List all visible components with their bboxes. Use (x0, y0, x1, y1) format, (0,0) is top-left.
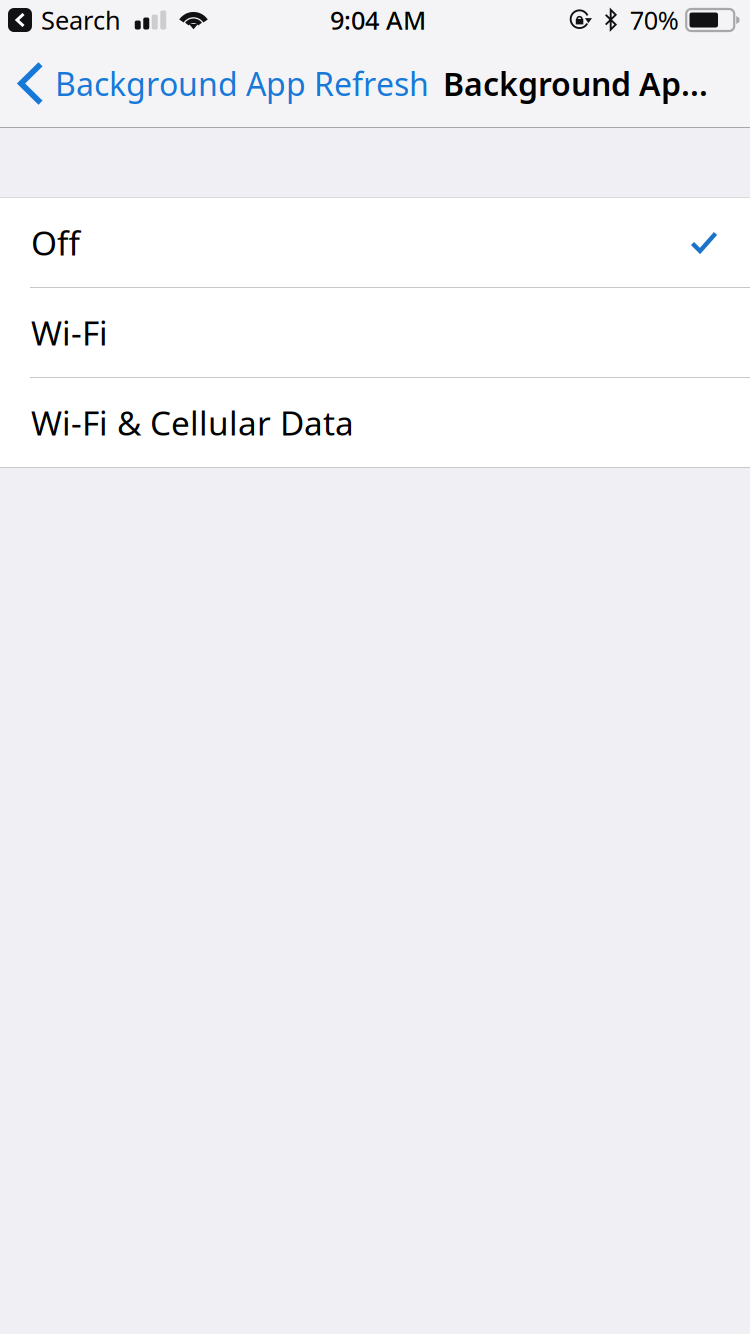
button[interactable]: Wi-Fi & Cellular Data (0, 378, 750, 467)
staticText: Background App Refresh (55, 62, 429, 105)
button[interactable]: Back to Background App Refresh (0, 40, 429, 127)
button[interactable]: Off (0, 198, 750, 287)
staticText: Wi-Fi & Cellular Data (31, 400, 354, 445)
staticText: Background Ap... (443, 62, 708, 105)
staticText: Off (31, 220, 80, 265)
staticText: Wi-Fi (31, 310, 108, 355)
staticText: Search (41, 3, 121, 37)
staticText: 9:04 AM (330, 3, 426, 37)
staticText: 70% (630, 3, 679, 37)
button[interactable]: Wi-Fi (0, 288, 750, 377)
